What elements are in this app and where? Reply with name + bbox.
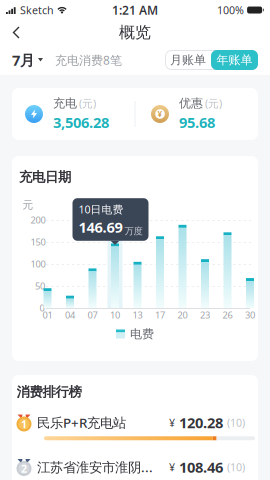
staticText: 充电消费8笔	[55, 52, 122, 68]
staticText: 04	[65, 309, 75, 321]
staticText: 月账单	[170, 53, 206, 67]
staticText: ¥	[169, 415, 175, 430]
staticText: 概览	[119, 23, 151, 42]
staticText: 23	[200, 309, 210, 321]
staticText: 7月	[12, 50, 35, 70]
staticText: 充电	[53, 96, 77, 111]
staticText: 电费	[130, 327, 154, 341]
staticText: 民乐P+R充电站	[37, 414, 126, 431]
button[interactable]: 年账单	[211, 50, 258, 70]
button[interactable]: 7月	[12, 50, 43, 70]
staticText: (10)	[227, 415, 245, 430]
staticText: 26	[222, 309, 232, 321]
staticText: 优惠	[179, 96, 203, 111]
staticText: 10日电费	[78, 202, 123, 216]
staticText: 年账单	[216, 53, 252, 67]
staticText: Sketch	[20, 3, 54, 17]
staticText: 10	[110, 309, 120, 321]
button[interactable]: 月账单	[165, 50, 211, 70]
staticText: 3,506.28	[53, 113, 109, 132]
staticText: 消费排行榜	[16, 384, 81, 400]
staticText: 01	[42, 309, 52, 321]
staticText: 13	[132, 309, 142, 321]
staticText: 1:21 AM	[112, 2, 158, 18]
staticText: 108.46	[179, 457, 223, 477]
staticText: 17	[155, 309, 165, 321]
staticText: ¥	[157, 109, 162, 119]
staticText: 充电日期	[19, 169, 71, 185]
staticText: 0	[39, 302, 44, 314]
staticText: (元)	[205, 96, 222, 110]
staticText: 200	[30, 214, 45, 226]
staticText: 江苏省淮安市淮阴...	[37, 458, 153, 476]
staticText: (10)	[227, 460, 245, 474]
button[interactable]	[0, 26, 20, 38]
staticText: 元	[22, 198, 33, 211]
staticText: 150	[30, 236, 45, 248]
button[interactable]: 1	[5, 413, 265, 440]
staticText: 100%	[217, 3, 244, 17]
staticText: 100	[30, 258, 45, 270]
staticText: (元)	[79, 96, 96, 110]
staticText: 50	[35, 280, 45, 292]
staticText: 20	[177, 309, 187, 321]
staticText: 146.69	[78, 217, 122, 237]
staticText: 万度	[124, 225, 142, 237]
button[interactable]: 2	[5, 457, 265, 477]
staticText: ¥	[169, 460, 175, 474]
staticText: 30	[245, 309, 255, 321]
staticText: 120.28	[179, 413, 223, 432]
staticText: 95.68	[179, 113, 215, 132]
staticText: 1	[21, 417, 27, 431]
staticText: 07	[87, 309, 97, 321]
staticText: 2	[21, 461, 27, 476]
